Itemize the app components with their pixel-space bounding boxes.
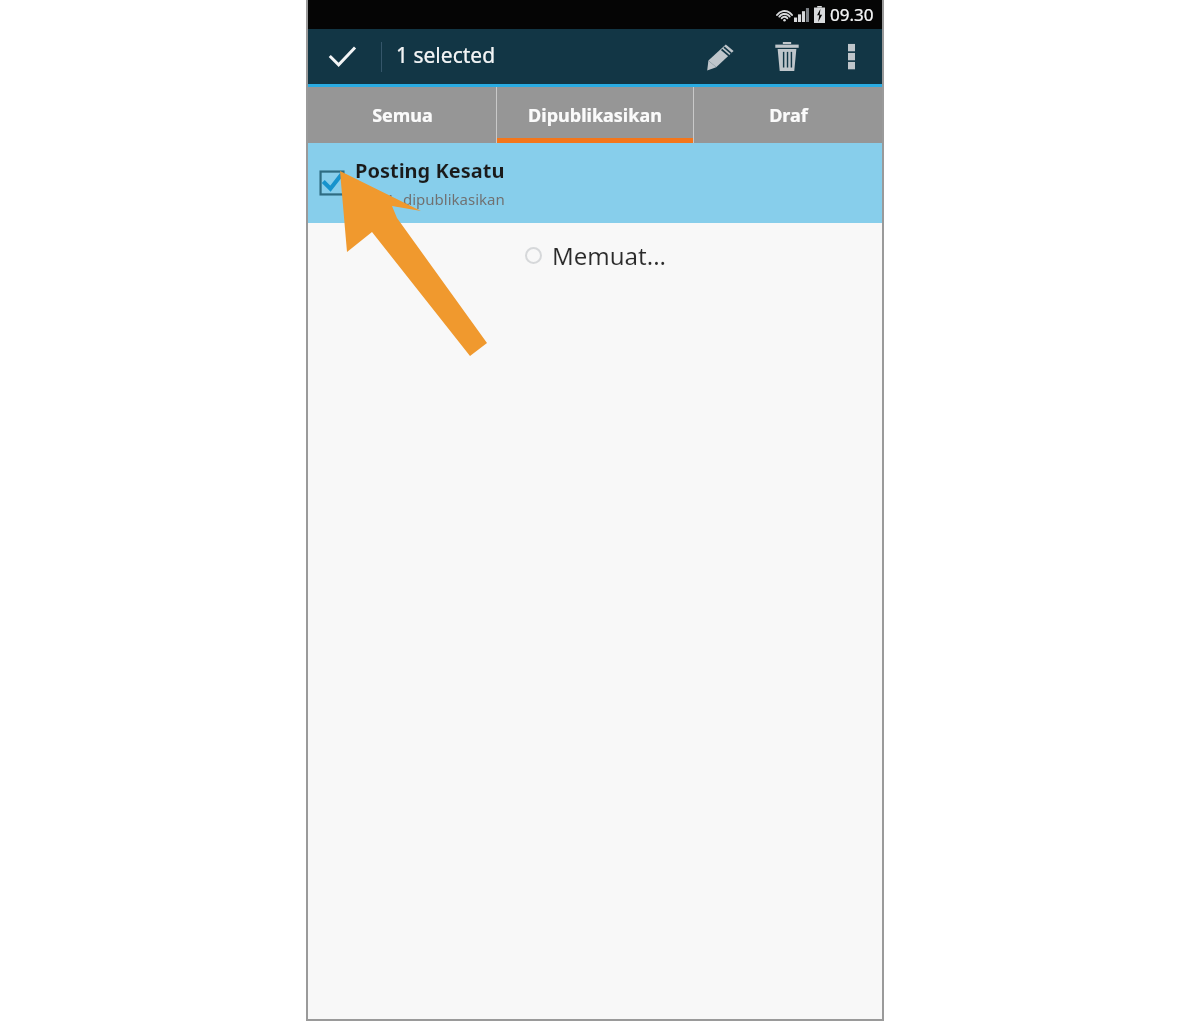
staticText: dipublikasikan [403, 189, 505, 209]
staticText: Draf [769, 103, 808, 128]
button[interactable]: Done [308, 29, 376, 84]
button[interactable]: Selected [319, 170, 345, 196]
staticText: 1 selected [396, 41, 496, 70]
staticText: Memuat... [552, 239, 666, 272]
button[interactable]: Dipublikasikan [497, 87, 693, 143]
button[interactable]: More options [820, 29, 882, 84]
button[interactable]: Semua [308, 87, 496, 143]
button[interactable]: Selected [308, 143, 882, 223]
button[interactable]: Draf [694, 87, 882, 143]
staticText: 09.30 [830, 3, 874, 26]
staticText: Dipublikasikan [528, 103, 662, 128]
staticText: Posting Kesatu [355, 157, 505, 184]
button[interactable]: Delete [754, 29, 820, 84]
staticText: Semua [372, 103, 433, 128]
staticText: 09.24 [355, 189, 394, 209]
button[interactable]: Edit [688, 29, 754, 84]
